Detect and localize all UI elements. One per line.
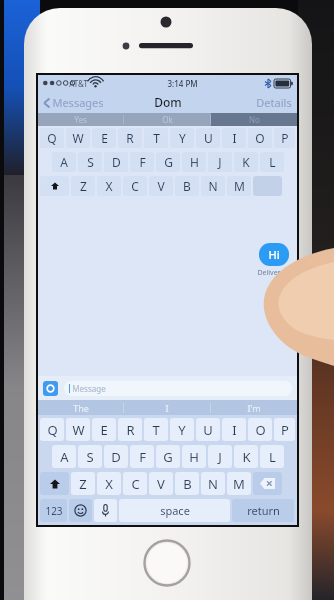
button[interactable]: D xyxy=(104,445,128,468)
button[interactable]: The xyxy=(38,400,123,415)
button[interactable]: A xyxy=(52,152,76,172)
staticText: V xyxy=(157,475,165,493)
button[interactable]: Y xyxy=(170,418,194,441)
button[interactable]: M xyxy=(227,472,251,495)
button[interactable]: L xyxy=(260,152,284,172)
button[interactable]: V xyxy=(149,176,173,196)
staticText: R xyxy=(126,130,134,146)
button[interactable]: H xyxy=(182,445,206,468)
button[interactable]: P xyxy=(274,128,295,148)
staticText: N xyxy=(208,178,218,194)
staticText: N xyxy=(208,475,218,493)
button[interactable]: X xyxy=(97,472,121,495)
staticText: R xyxy=(126,421,135,439)
button[interactable]: B xyxy=(175,176,199,196)
button[interactable]: Q xyxy=(40,418,64,441)
button[interactable]: T xyxy=(144,418,168,441)
button[interactable]: B xyxy=(175,472,199,495)
button[interactable]: K xyxy=(234,445,258,468)
button[interactable]: V xyxy=(149,472,173,495)
staticText: H xyxy=(189,448,199,466)
button[interactable]: O xyxy=(248,418,272,441)
button[interactable]: I'm xyxy=(211,400,297,415)
staticText: O xyxy=(255,130,265,146)
button[interactable]: L xyxy=(260,445,284,468)
button[interactable]: Emoji xyxy=(69,499,92,522)
staticText: M xyxy=(233,475,245,493)
button[interactable]: Details xyxy=(251,92,297,113)
staticText: G xyxy=(164,154,173,170)
staticText: F xyxy=(139,154,146,170)
button[interactable]: U xyxy=(196,418,220,441)
button[interactable]: F xyxy=(130,152,154,172)
button[interactable]: S xyxy=(78,445,102,468)
staticText: 3:14 PM xyxy=(167,78,198,89)
button[interactable]: D xyxy=(104,152,128,172)
button[interactable]: C xyxy=(123,472,147,495)
button[interactable]: S xyxy=(78,152,102,172)
button[interactable]: space xyxy=(119,499,230,522)
button[interactable]: N xyxy=(201,472,225,495)
button[interactable]: R xyxy=(118,418,142,441)
staticText: Z xyxy=(80,178,87,194)
staticText: T xyxy=(152,421,160,439)
staticText: D xyxy=(112,154,121,170)
button[interactable]: J xyxy=(208,152,232,172)
button[interactable]: Y xyxy=(170,128,194,148)
staticText: Message xyxy=(72,383,106,394)
button[interactable]: Shift xyxy=(40,472,69,495)
button[interactable]: N xyxy=(201,176,225,196)
staticText: Dom xyxy=(154,94,182,110)
button[interactable]: Message xyxy=(64,381,292,396)
button[interactable]: Delete xyxy=(253,472,282,495)
button[interactable]: M xyxy=(227,176,251,196)
staticText: E xyxy=(100,421,108,439)
button[interactable]: Messages xyxy=(41,92,106,113)
button[interactable]: C xyxy=(123,176,147,196)
button[interactable]: X xyxy=(97,176,121,196)
button[interactable]: W xyxy=(66,418,90,441)
staticText: B xyxy=(183,475,192,493)
button[interactable]: Dictation xyxy=(94,499,117,522)
button[interactable]: R xyxy=(118,128,142,148)
button[interactable]: Z xyxy=(71,176,95,196)
button[interactable]: E xyxy=(92,128,116,148)
button[interactable] xyxy=(40,176,69,196)
button[interactable]: K xyxy=(234,152,258,172)
staticText: T xyxy=(153,130,160,146)
button[interactable]: O xyxy=(248,128,272,148)
staticText: B xyxy=(183,178,191,194)
staticText: C xyxy=(131,475,140,493)
staticText: W xyxy=(72,421,85,439)
button[interactable]: U xyxy=(196,128,220,148)
button[interactable]: G xyxy=(156,152,180,172)
staticText: No xyxy=(249,114,260,125)
button[interactable]: Q xyxy=(40,128,64,148)
button[interactable]: 123 xyxy=(40,499,67,522)
button[interactable]: return xyxy=(232,499,294,522)
button[interactable]: I xyxy=(222,128,246,148)
button[interactable]: F xyxy=(130,445,154,468)
button[interactable]: W xyxy=(66,128,90,148)
staticText: Hi xyxy=(268,247,280,262)
button[interactable]: G xyxy=(156,445,180,468)
button[interactable]: Z xyxy=(71,472,95,495)
staticText: Ok xyxy=(162,114,173,125)
button[interactable]: Hi xyxy=(259,243,289,266)
staticText: Delivered xyxy=(257,268,289,278)
button[interactable]: T xyxy=(144,128,168,148)
button[interactable]: H xyxy=(182,152,206,172)
button[interactable]: P xyxy=(274,418,295,441)
staticText: D xyxy=(111,448,121,466)
button[interactable]: E xyxy=(92,418,116,441)
staticText: A xyxy=(60,448,69,466)
staticText: P xyxy=(281,421,289,439)
button[interactable]: J xyxy=(208,445,232,468)
button[interactable]: I xyxy=(124,400,210,415)
button[interactable]: A xyxy=(52,445,76,468)
staticText: I'm xyxy=(247,402,261,414)
button[interactable]: I xyxy=(222,418,246,441)
button[interactable]: Camera xyxy=(43,381,58,396)
staticText: AT&T xyxy=(69,78,88,89)
